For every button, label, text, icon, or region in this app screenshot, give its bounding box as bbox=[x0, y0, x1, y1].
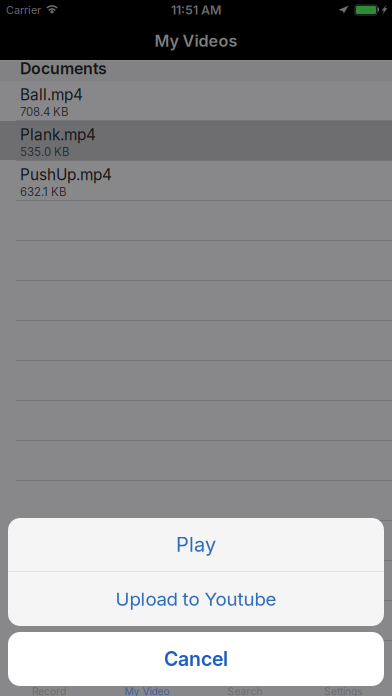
staticText: 11:51 AM bbox=[171, 2, 221, 17]
button[interactable]: Ball.mp4 bbox=[0, 81, 392, 121]
staticText: 535.0 KB bbox=[20, 145, 70, 159]
button[interactable]: Upload to Youtube bbox=[8, 572, 384, 626]
staticText: 708.4 KB bbox=[20, 105, 69, 119]
staticText: PushUp.mp4 bbox=[20, 165, 112, 184]
staticText: My Videos bbox=[154, 31, 237, 51]
staticText: Cancel bbox=[164, 647, 228, 671]
staticText: Plank.mp4 bbox=[20, 125, 96, 144]
staticText: Documents bbox=[20, 59, 107, 78]
button[interactable]: Search bbox=[196, 686, 294, 696]
staticText: Settings bbox=[324, 685, 362, 696]
staticText: My Video bbox=[124, 685, 169, 696]
button[interactable]: Settings bbox=[294, 686, 392, 696]
staticText: Ball.mp4 bbox=[20, 85, 83, 104]
button[interactable]: Plank.mp4 bbox=[0, 121, 392, 161]
button[interactable]: My Video bbox=[98, 686, 196, 696]
staticText: Search bbox=[227, 685, 262, 696]
staticText: Upload to Youtube bbox=[115, 588, 276, 610]
staticText: 632.1 KB bbox=[20, 185, 67, 199]
button[interactable]: Record bbox=[0, 686, 98, 696]
staticText: Record bbox=[32, 685, 66, 696]
button[interactable]: Play bbox=[8, 518, 384, 571]
staticText: Play bbox=[176, 532, 216, 557]
button[interactable]: Cancel bbox=[8, 632, 384, 686]
staticText: Carrier bbox=[6, 3, 41, 17]
button[interactable]: PushUp.mp4 bbox=[0, 161, 392, 201]
